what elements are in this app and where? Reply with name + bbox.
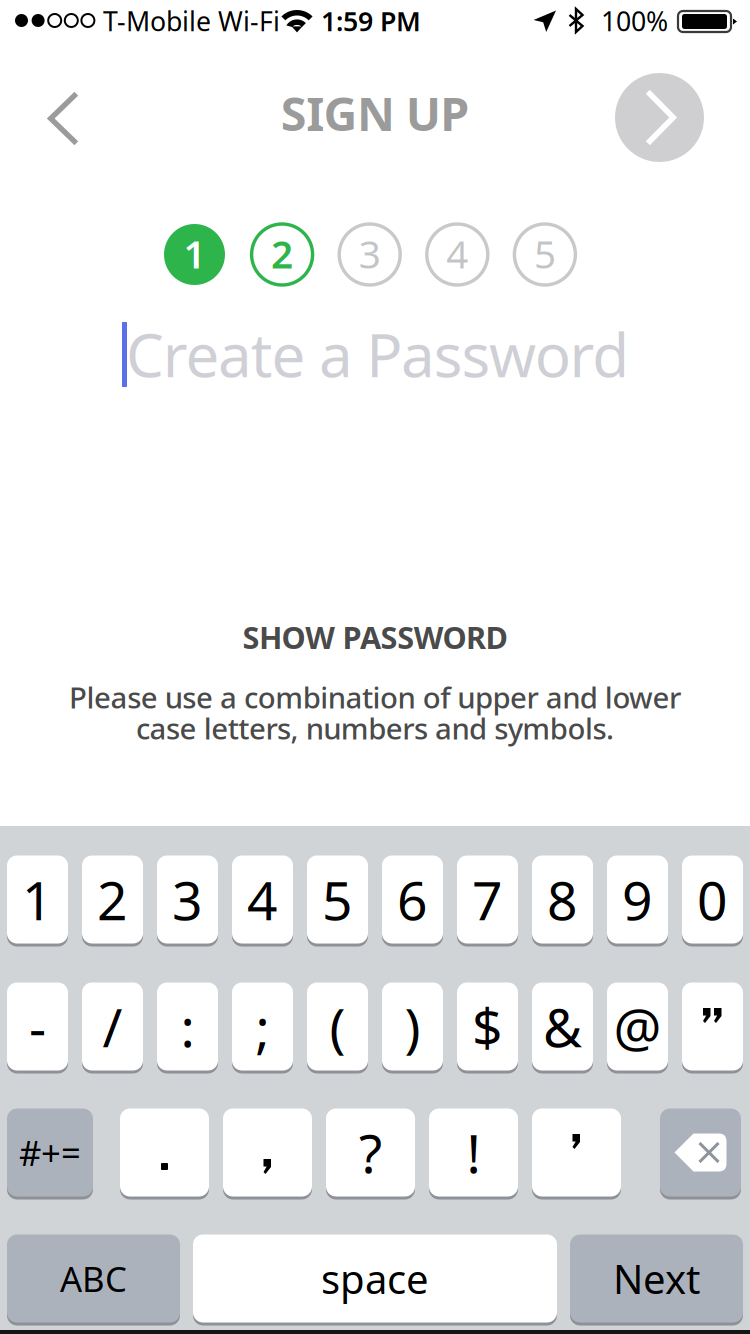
button[interactable]: ? [326,1107,415,1198]
staticText: ( [329,991,345,1062]
button[interactable]: 5 [307,854,368,945]
staticText: 1 [22,864,53,935]
button[interactable]: - [7,981,68,1072]
button[interactable]: / [82,981,143,1072]
button[interactable]: Back [10,63,122,175]
staticText: : [180,991,194,1062]
staticText: ABC [60,1255,127,1301]
button[interactable]: : [157,981,218,1072]
button[interactable]: space [193,1233,557,1324]
staticText: $ [472,991,503,1062]
button[interactable]: Next [605,63,717,175]
button[interactable]: ; [232,981,293,1072]
staticText: ; [255,991,269,1062]
button[interactable]: ) [382,981,443,1072]
button[interactable]: 6 [382,854,443,945]
staticText: ? [359,1117,382,1188]
button[interactable] [660,1107,741,1198]
staticText: T-Mobile Wi-Fi [103,3,280,39]
button[interactable] [682,981,743,1072]
button[interactable]: Next [570,1233,743,1324]
button[interactable]: ( [307,981,368,1072]
staticText: 3 [172,864,203,935]
staticText: ) [404,991,420,1062]
staticText: 5 [534,228,556,279]
staticText: 2 [97,864,128,935]
button[interactable]: #+= [7,1107,93,1198]
staticText: 0 [697,864,728,935]
staticText: case letters, numbers and symbols. [136,708,614,747]
staticText: Please use a combination of upper and lo… [69,677,681,716]
button[interactable]: 9 [607,854,668,945]
button[interactable]: & [532,981,593,1072]
staticText: 1 [183,228,205,279]
staticText: 8 [547,864,578,935]
staticText: @ [613,991,661,1062]
staticText: SIGN UP [281,82,469,144]
staticText: / [102,991,122,1062]
button[interactable]: $ [457,981,518,1072]
button[interactable]: 2 [82,854,143,945]
staticText: Create a Password [126,314,629,394]
button[interactable]: 8 [532,854,593,945]
staticText: 6 [397,864,428,935]
staticText: SHOW PASSWORD [242,617,508,657]
staticText: space [321,1252,429,1305]
staticText: ! [466,1117,480,1188]
button[interactable]: 0 [682,854,743,945]
staticText: - [29,991,46,1062]
button[interactable] [532,1107,621,1198]
button[interactable]: ! [429,1107,518,1198]
staticText: 1:59 PM [321,3,421,39]
button[interactable] [120,1107,209,1198]
staticText: 4 [446,228,468,279]
staticText: #+= [19,1129,81,1175]
staticText: 7 [472,864,503,935]
button[interactable]: ABC [7,1233,180,1324]
button[interactable]: 7 [457,854,518,945]
button[interactable]: @ [607,981,668,1072]
staticText: 4 [247,864,278,935]
staticText: 3 [359,228,381,279]
button[interactable]: 1 [7,854,68,945]
button[interactable]: 3 [157,854,218,945]
staticText: Next [613,1252,700,1305]
staticText: 5 [322,864,353,935]
button[interactable] [223,1107,312,1198]
staticText: 2 [271,228,293,279]
staticText: 100% [601,3,668,39]
button[interactable]: 4 [232,854,293,945]
staticText: 9 [622,864,653,935]
staticText: & [543,991,582,1062]
